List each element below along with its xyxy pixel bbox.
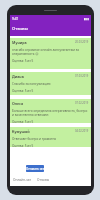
staticText: 9:41 bbox=[12, 17, 19, 21]
staticText: 04.02.2019 bbox=[75, 129, 89, 133]
staticText: Спасибо за консультацию bbox=[12, 82, 51, 86]
button[interactable]: Онлайн-чат bbox=[13, 178, 32, 182]
staticText: Диана bbox=[12, 74, 24, 79]
staticText: Мунира bbox=[12, 40, 27, 45]
button[interactable]: Диана bbox=[10, 72, 91, 95]
staticText: ▮▮ ▮ bbox=[84, 17, 89, 21]
button[interactable]: Кумушай bbox=[10, 127, 91, 147]
staticText: Оценка: 5 из 5 bbox=[12, 144, 34, 147]
button[interactable]: Олеся bbox=[10, 99, 91, 123]
staticText: 07.03.2019 bbox=[75, 74, 89, 78]
staticText: Отзывы bbox=[12, 26, 28, 32]
staticText: Олеся bbox=[12, 101, 24, 106]
staticText: Больше всего определила оперативность, б… bbox=[12, 109, 89, 117]
button[interactable]: Отзывы bbox=[10, 22, 91, 36]
staticText: Кумушай bbox=[12, 129, 30, 134]
button[interactable]: Отзывы bbox=[37, 178, 50, 182]
staticText: Оставить отзыв bbox=[26, 167, 44, 171]
staticText: 20.03.2019 bbox=[75, 40, 89, 44]
staticText: Оценка: 5 из 5 bbox=[12, 120, 34, 123]
button[interactable]: Мунира bbox=[10, 38, 91, 69]
staticText: 07.02.2019 bbox=[75, 101, 89, 105]
staticText: Оценка: 5 из 5 bbox=[12, 89, 34, 93]
staticText: Отвечают быстро и грамотно bbox=[12, 137, 57, 141]
staticText: спасибо огромное онлайн-консультантам за… bbox=[12, 48, 89, 56]
staticText: Оценка: 5 из 5 bbox=[12, 59, 34, 63]
button[interactable]: Оставить отзыв bbox=[26, 165, 44, 172]
